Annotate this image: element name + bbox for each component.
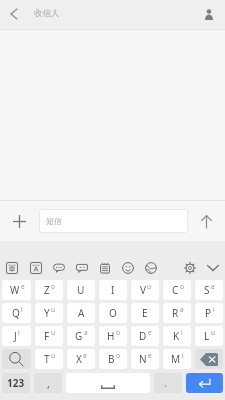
staticText: K [173,329,180,343]
staticText: H [107,329,115,343]
staticText: u [51,351,56,360]
button[interactable]: Numbers [2,373,30,393]
button[interactable]: D [131,326,159,346]
button[interactable]: Emoji [116,255,139,280]
staticText: W [10,283,20,297]
staticText: i [21,305,23,314]
staticText: X [76,352,82,366]
staticText: a [180,305,184,314]
button[interactable]: Clipboard [93,255,116,280]
staticText: Y [44,306,50,320]
staticText: a [84,328,88,337]
staticText: u [147,282,152,291]
staticText: i [213,305,215,314]
button[interactable]: 短信 [39,209,188,233]
staticText: o [116,328,120,337]
button[interactable]: Search [2,349,31,369]
button[interactable]: Comma [34,373,62,393]
staticText: S [204,283,210,297]
staticText: E [142,306,148,320]
button[interactable]: J [2,326,31,346]
button[interactable]: P [195,303,223,323]
staticText: R [172,306,179,320]
staticText: , [47,376,50,391]
staticText: O [109,306,117,320]
button[interactable]: Messages [70,255,93,280]
staticText: o [116,351,120,360]
button[interactable]: X [67,349,95,369]
button[interactable]: H [99,326,127,346]
staticText: i [182,351,184,360]
staticText: a [211,282,215,291]
staticText: B [108,352,115,366]
staticText: Q [12,306,20,320]
staticText: M [171,352,181,366]
staticText: u [211,328,216,337]
staticText: P [205,306,212,320]
button[interactable]: G [67,326,95,346]
button[interactable]: L [195,326,223,346]
button[interactable]: Period [154,373,182,393]
button[interactable]: Send [188,201,225,241]
staticText: i [18,328,20,337]
staticText: 收信人 [34,8,60,19]
staticText: I [111,283,115,297]
button[interactable]: Z [35,280,63,300]
button[interactable]: B [99,349,127,369]
button[interactable]: Themes [139,255,162,280]
staticText: F [44,329,50,343]
button[interactable]: Settings [178,255,201,280]
button[interactable]: A [67,303,95,323]
button[interactable]: Quick phrases [47,255,70,280]
button[interactable]: Back [2,2,26,26]
staticText: i [181,328,183,337]
button[interactable]: C [163,280,191,300]
button[interactable]: E [131,303,159,323]
staticText: o [180,282,184,291]
staticText: e [21,282,25,291]
staticText: Z [44,283,50,297]
staticText: D [139,329,147,343]
staticText: T [44,352,50,366]
button[interactable]: F [35,326,63,346]
button[interactable]: U [67,280,95,300]
button[interactable]: S [195,280,223,300]
staticText: V [140,283,146,297]
button[interactable]: Q [2,303,31,323]
button[interactable]: R [163,303,191,323]
button[interactable]: Backspace [195,349,223,369]
button[interactable]: Hide keyboard [201,255,225,280]
staticText: o [51,282,55,291]
staticText: u [51,305,56,314]
staticText: A [78,306,85,320]
button[interactable]: Space [66,373,150,393]
staticText: J [14,329,17,343]
button[interactable]: T [35,349,63,369]
staticText: U [77,283,85,297]
button[interactable]: Contacts [199,4,219,24]
button[interactable]: M [163,349,191,369]
staticText: e [148,351,152,360]
button[interactable]: I [99,280,127,300]
button[interactable]: English input [24,255,47,280]
button[interactable]: O [99,303,127,323]
button[interactable]: W [2,280,31,300]
staticText: L [204,329,210,343]
button[interactable]: N [131,349,159,369]
staticText: 123 [7,376,25,390]
staticText: a [83,351,87,360]
staticText: 。 [164,378,172,388]
button[interactable]: Y [35,303,63,323]
staticText: u [51,328,56,337]
button[interactable]: Enter [186,373,223,393]
button[interactable]: Chinese input [0,255,24,280]
staticText: e [148,328,152,337]
staticText: 短信 [46,216,62,226]
button[interactable]: Add attachment [0,201,39,241]
staticText: G [75,329,83,343]
button[interactable]: K [163,326,191,346]
button[interactable]: V [131,280,159,300]
staticText: N [139,352,147,366]
staticText: C [172,283,179,297]
